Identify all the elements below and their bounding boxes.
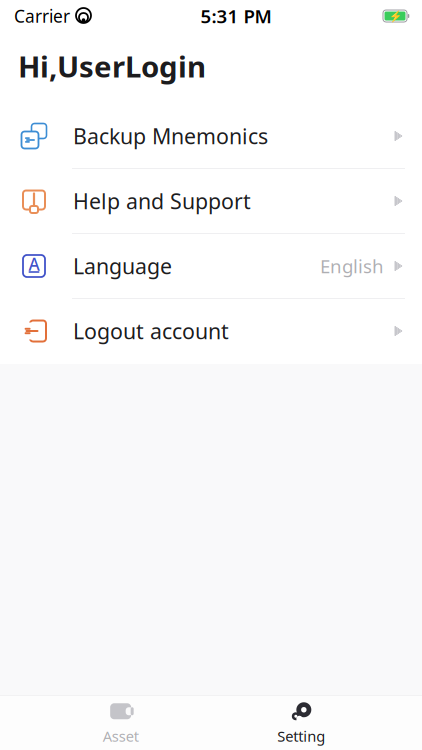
staticText: English [320,254,384,278]
staticText: Backup Mnemonics [73,122,268,150]
button[interactable]: Asset [61,699,181,747]
staticText: Carrier [14,4,70,27]
button[interactable]: A [0,234,422,299]
staticText: Asset [103,726,139,746]
staticText: A [28,252,39,275]
staticText: ⚡ [388,10,401,22]
button[interactable]: Backup Mnemonics [0,104,422,169]
staticText: Help and Support [73,187,251,215]
button[interactable]: Help and Support [0,169,422,234]
staticText: Setting [277,726,325,746]
staticText: Hi,UserLogin [18,46,206,85]
staticText: 5:31 PM [200,4,271,28]
button[interactable]: Setting [241,699,361,747]
staticText: Language [73,252,172,280]
button[interactable]: Logout account [0,299,422,364]
staticText: Logout account [73,317,229,345]
